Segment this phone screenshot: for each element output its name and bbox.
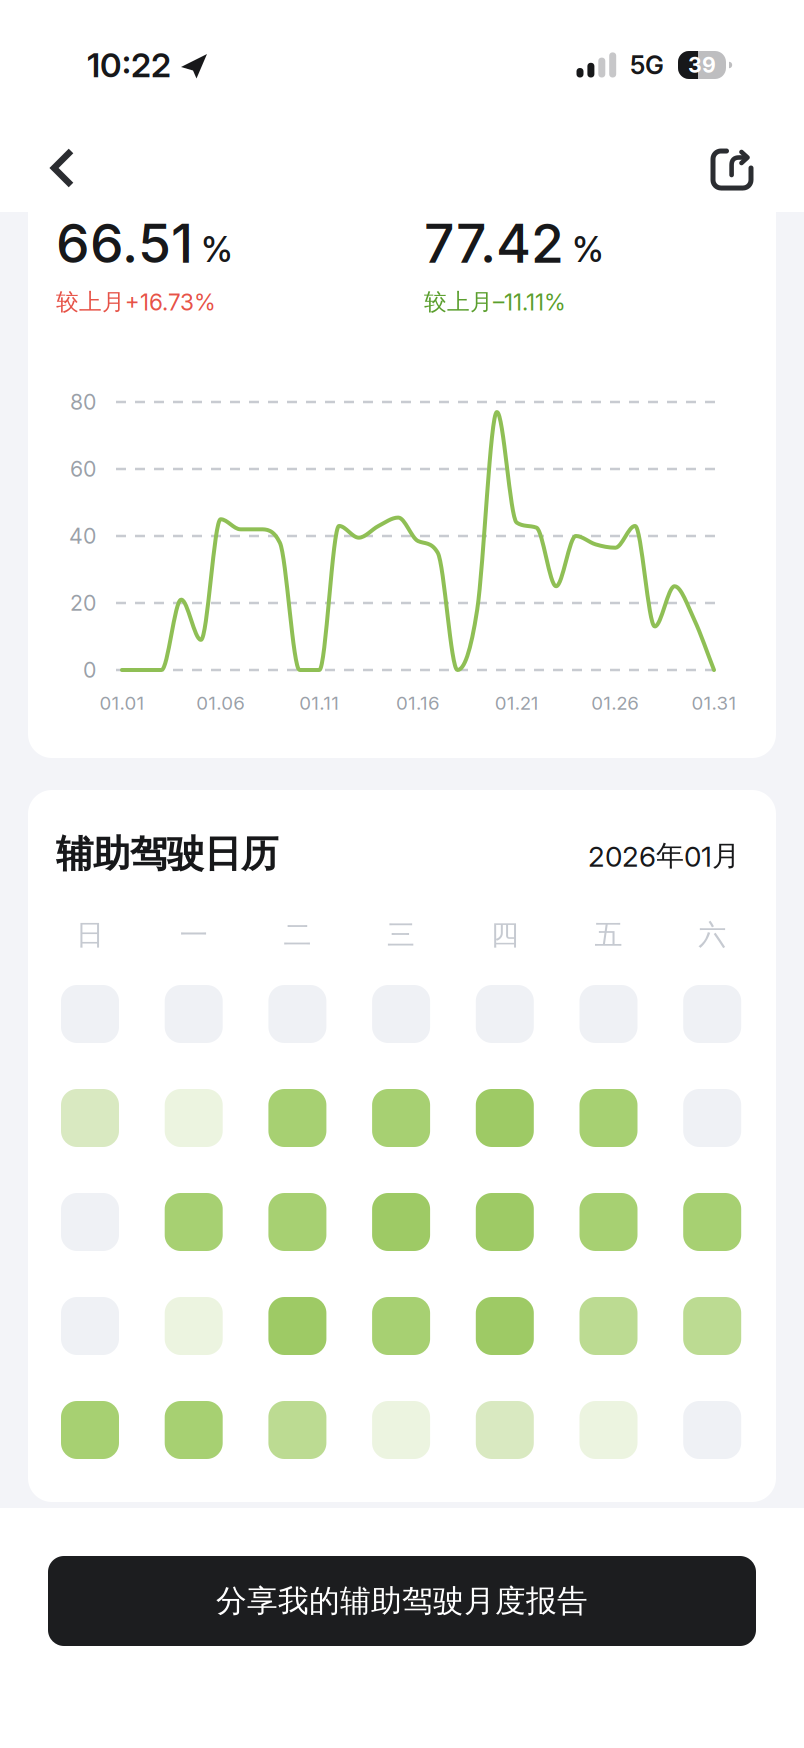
staticText: 10:22 — [87, 45, 171, 85]
staticText: 5G — [630, 50, 664, 80]
staticText: 01.01 — [99, 692, 144, 714]
button[interactable]: 分享我的辅助驾驶月度报告 — [48, 1556, 756, 1646]
button[interactable]: Share — [688, 124, 776, 212]
staticText: 01.26 — [591, 692, 639, 714]
staticText: 四 — [491, 918, 519, 952]
staticText: 01.11 — [299, 692, 339, 714]
staticText: % — [201, 229, 233, 270]
staticText: 较上月+16.73% — [56, 288, 216, 316]
staticText: 2026年01月 — [588, 839, 740, 873]
staticText: 分享我的辅助驾驶月度报告 — [216, 1582, 588, 1620]
staticText: 较上月–11.11% — [424, 288, 566, 316]
staticText: 01.06 — [196, 692, 245, 714]
staticText: 66.51 — [56, 212, 193, 275]
staticText: 01.21 — [495, 692, 539, 714]
staticText: 40 — [69, 523, 96, 549]
staticText: 日 — [76, 918, 104, 952]
staticText: 01.31 — [691, 692, 736, 714]
button[interactable]: Back — [10, 124, 98, 212]
staticText: 77.42 — [424, 212, 564, 275]
staticText: 0 — [83, 657, 96, 683]
staticText: 39 — [688, 52, 716, 78]
staticText: 一 — [180, 918, 208, 952]
staticText: % — [572, 229, 604, 270]
staticText: 20 — [70, 590, 96, 616]
staticText: 五 — [594, 918, 622, 952]
staticText: 六 — [698, 918, 726, 952]
staticText: 60 — [70, 456, 96, 482]
staticText: 三 — [387, 918, 415, 952]
staticText: 80 — [70, 389, 96, 415]
staticText: 辅助驾驶日历 — [56, 831, 278, 877]
staticText: 二 — [283, 918, 311, 952]
staticText: 01.16 — [396, 692, 440, 714]
